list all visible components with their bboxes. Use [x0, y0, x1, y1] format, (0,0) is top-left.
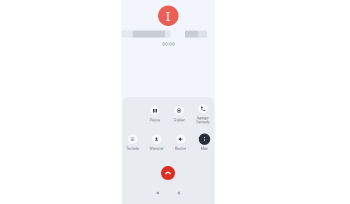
staticText: Pausa: [150, 118, 160, 122]
button[interactable]: Agregar llamada: [191, 100, 215, 126]
staticText: Más: [201, 146, 208, 151]
button[interactable]: Pausa: [143, 100, 167, 126]
staticText: Teclado: [126, 146, 139, 151]
button[interactable]: Teclado: [120, 129, 144, 155]
staticText: Bocina: [175, 146, 186, 151]
button[interactable]: End call: [161, 166, 175, 180]
staticText: Grabar: [173, 118, 184, 122]
button[interactable]: Silenciar: [144, 129, 168, 155]
button[interactable]: Bocina: [168, 129, 192, 155]
staticText: Agregar llamada: [196, 116, 209, 124]
staticText: Silenciar: [149, 146, 163, 151]
staticText: I: [166, 7, 171, 25]
staticText: 00:09: [162, 41, 174, 46]
button[interactable]: Grabar: [167, 100, 191, 126]
button[interactable]: Más: [192, 129, 216, 155]
